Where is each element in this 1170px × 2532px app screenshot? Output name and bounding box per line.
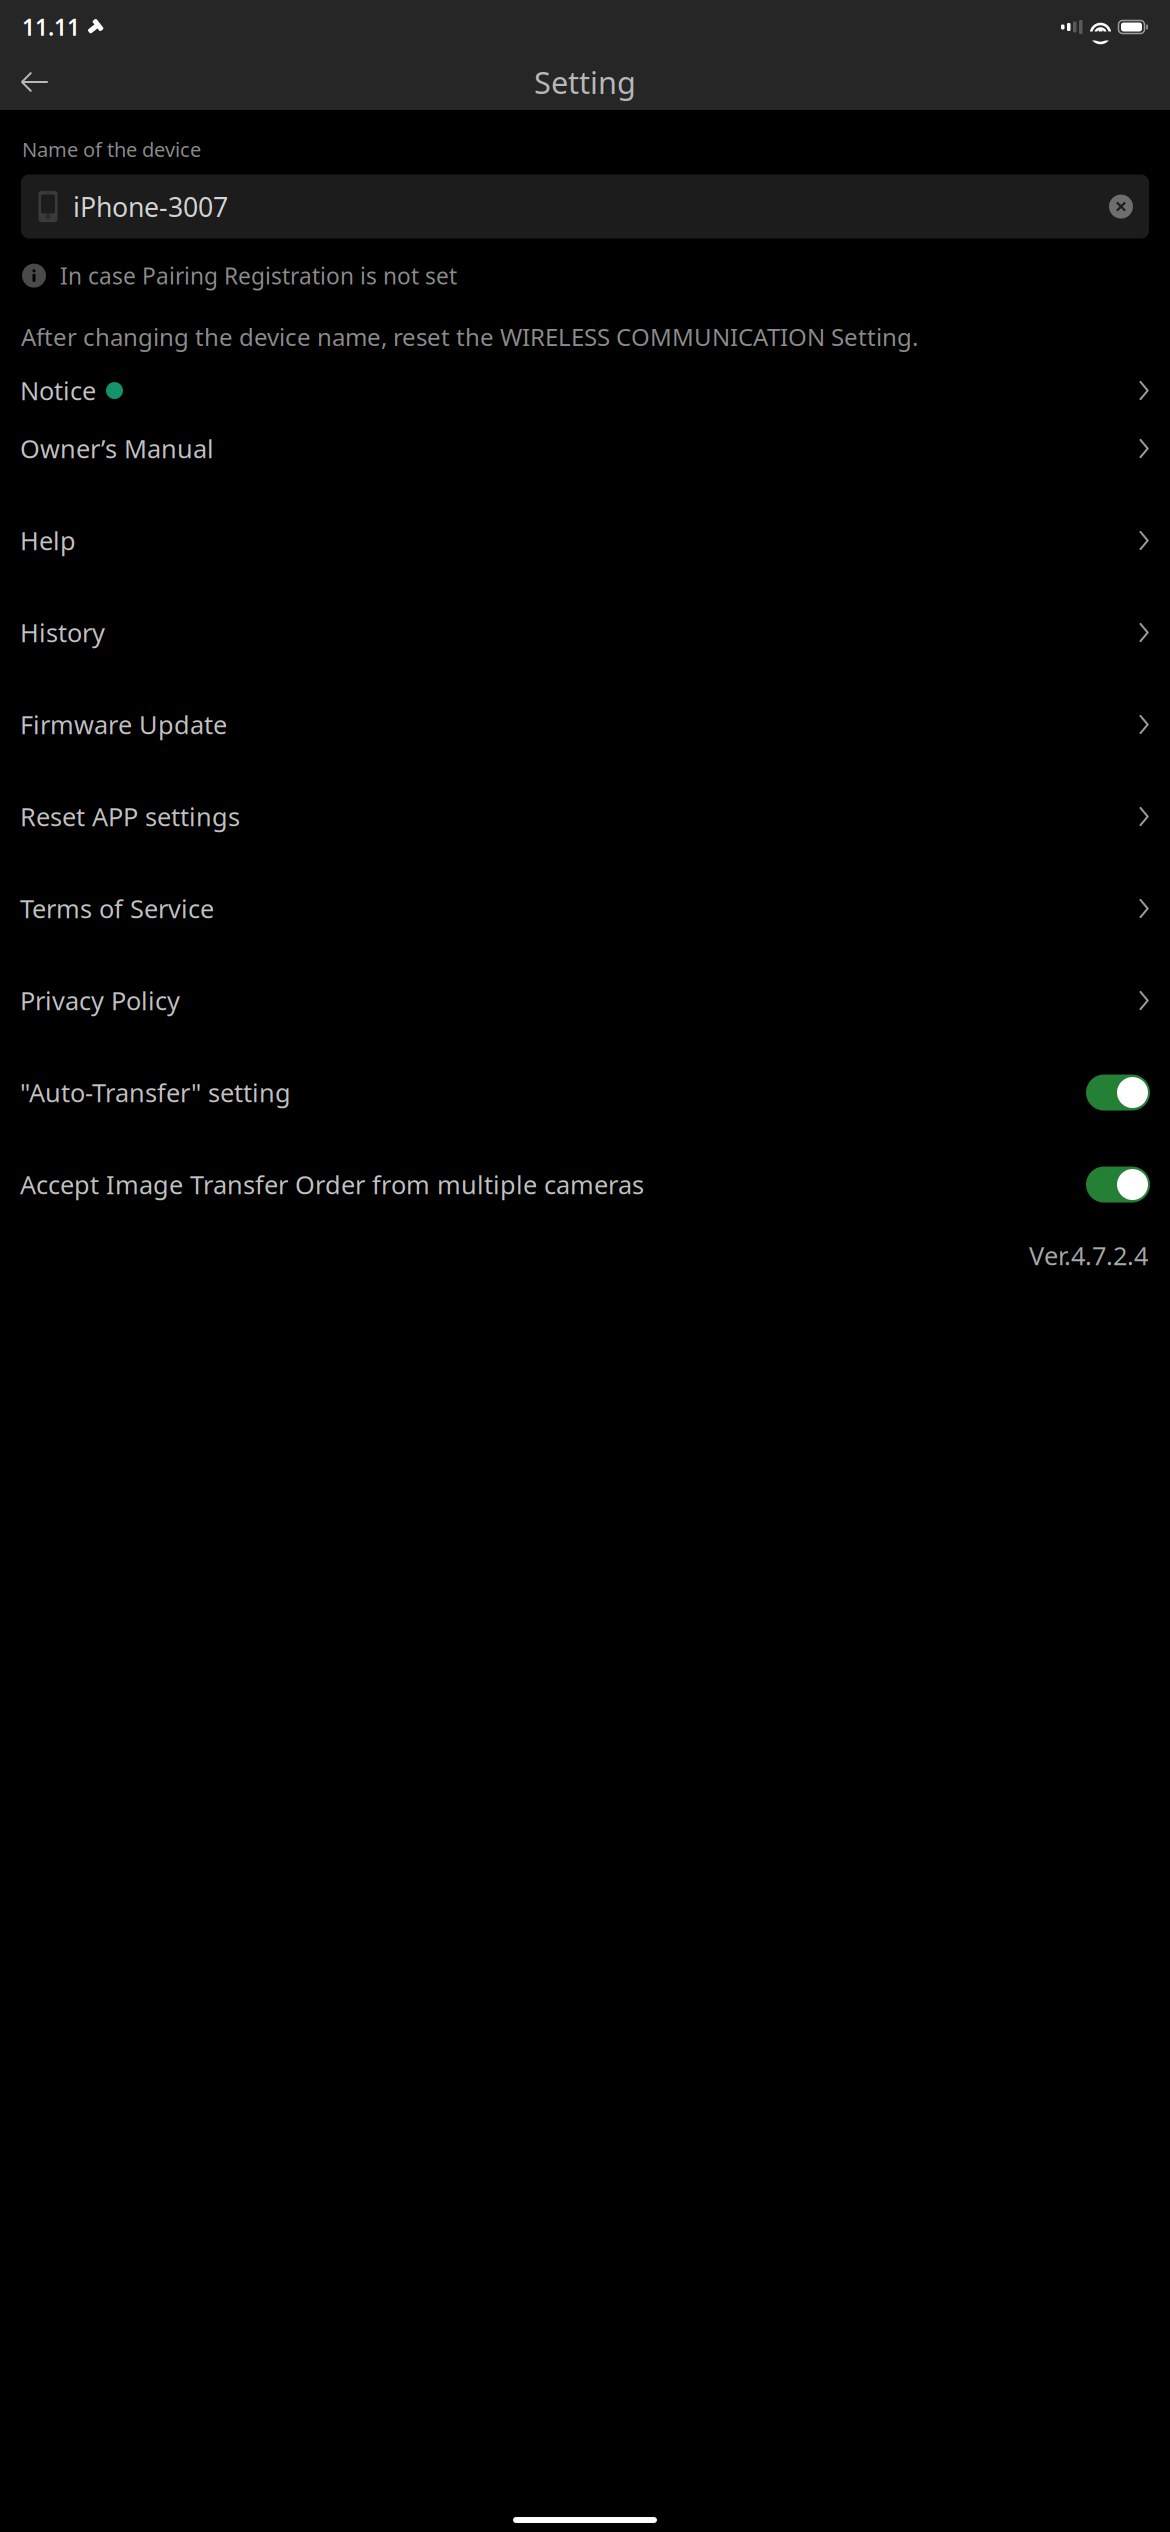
staticText: Setting <box>534 62 636 102</box>
staticText: In case Pairing Registration is not set <box>60 261 457 291</box>
staticText: Accept Image Transfer Order from multipl… <box>20 1168 644 1201</box>
staticText: Privacy Policy <box>20 984 180 1017</box>
staticText: After changing the device name, reset th… <box>21 321 918 353</box>
staticText: iPhone-3007 <box>73 189 228 224</box>
staticText: Name of the device <box>22 136 201 163</box>
staticText: Terms of Service <box>20 892 214 925</box>
staticText: Firmware Update <box>20 708 227 741</box>
staticText: "Auto-Transfer" setting <box>20 1076 291 1109</box>
staticText: Owner’s Manual <box>20 432 214 465</box>
staticText: Reset APP settings <box>20 800 240 833</box>
button[interactable]: "Auto-Transfer" setting <box>0 1046 1170 1138</box>
button[interactable]: Notice <box>0 370 1170 410</box>
button[interactable]: Accept Image Transfer Order from multipl… <box>0 1138 1170 1230</box>
button[interactable]: Reset APP settings <box>0 770 1170 862</box>
button[interactable]: Back <box>0 54 70 110</box>
button[interactable]: Terms of Service <box>0 862 1170 954</box>
button[interactable]: Help <box>0 494 1170 586</box>
button[interactable]: Firmware Update <box>0 678 1170 770</box>
button[interactable]: Privacy Policy <box>0 954 1170 1046</box>
button[interactable]: History <box>0 586 1170 678</box>
staticText: Help <box>20 524 76 557</box>
staticText: History <box>20 616 105 649</box>
button[interactable]: Owner’s Manual <box>0 402 1170 494</box>
staticText: Ver.4.7.2.4 <box>1029 1238 1148 1272</box>
staticText: 11.11 <box>22 12 80 42</box>
button[interactable]: Clear text <box>1109 195 1133 219</box>
staticText: Notice <box>20 374 96 407</box>
